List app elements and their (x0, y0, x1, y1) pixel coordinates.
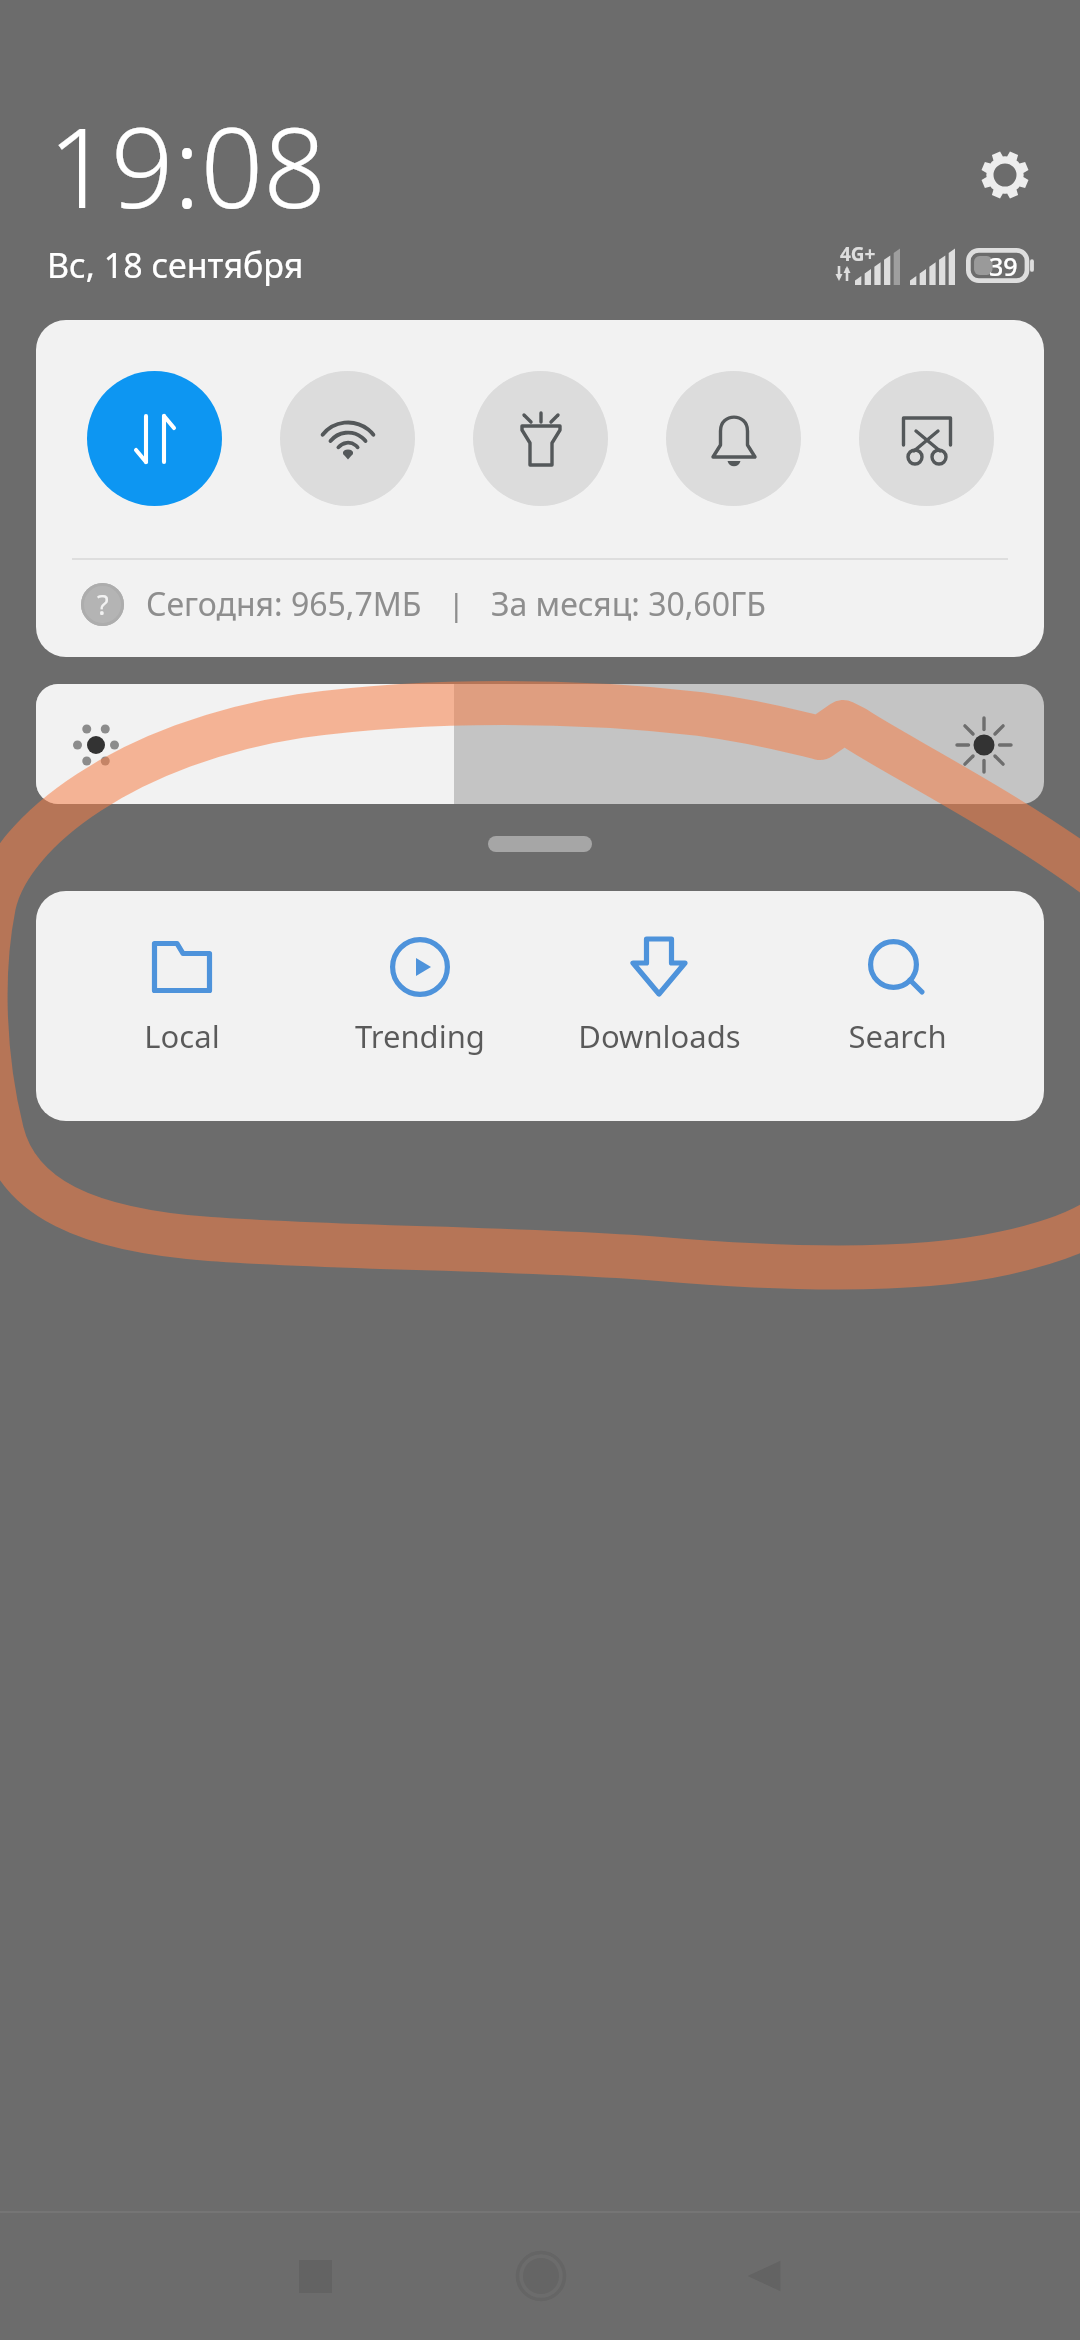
staticText: 39 (989, 249, 1018, 283)
staticText: 19:08 (48, 90, 327, 240)
button[interactable]: Settings (957, 127, 1053, 223)
staticText: | (448, 584, 465, 625)
staticText: За месяц: 30,60ГБ (491, 582, 766, 626)
staticText: Вс, 18 сентября (47, 242, 304, 288)
button[interactable]: Trending (301, 891, 539, 1121)
staticText: Local (144, 1015, 220, 1057)
button[interactable]: Screenshot (859, 371, 994, 506)
staticText: Downloads (578, 1015, 741, 1057)
staticText: Trending (355, 1015, 485, 1057)
button[interactable]: Search (778, 891, 1016, 1121)
staticText: 4G+ (840, 241, 876, 267)
button[interactable]: Mobile data (87, 371, 222, 506)
button[interactable]: Wi-Fi (280, 371, 415, 506)
button[interactable]: Downloads (540, 891, 778, 1121)
button[interactable] (36, 684, 1044, 804)
staticText: Search (848, 1015, 947, 1057)
staticText: ? (97, 586, 109, 623)
button[interactable]: Local (63, 891, 301, 1121)
button[interactable]: Flashlight (473, 371, 608, 506)
button[interactable]: Do not disturb (666, 371, 801, 506)
staticText: Сегодня: 965,7МБ (146, 582, 422, 626)
